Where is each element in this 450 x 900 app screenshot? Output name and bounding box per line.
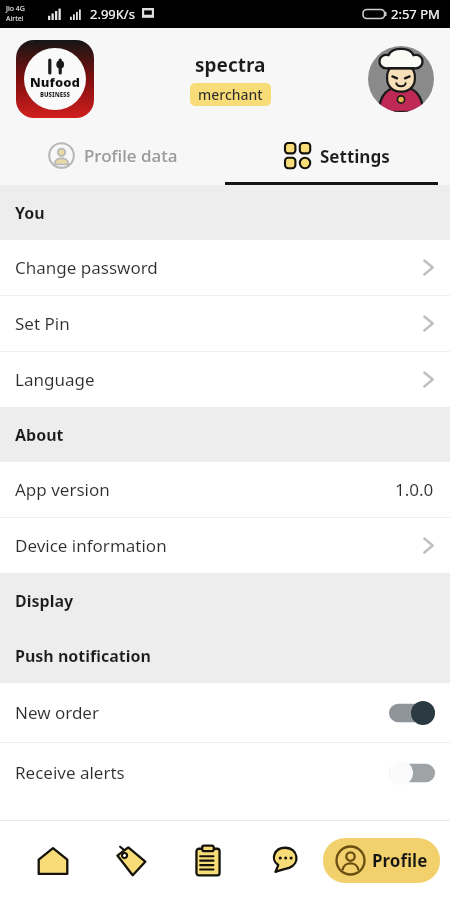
staticText: 1.0.0 [395, 478, 434, 501]
staticText: 2:57 PM [391, 5, 440, 23]
button[interactable]: Language [0, 352, 450, 407]
staticText: Language [15, 368, 95, 391]
button[interactable]: Home [14, 821, 92, 900]
staticText: You [15, 202, 45, 224]
button[interactable]: Profile avatar [368, 46, 434, 112]
staticText: Jio 4G [6, 4, 25, 14]
staticText: merchant [198, 85, 263, 104]
staticText: 2.99K/s [90, 5, 135, 23]
staticText: Change password [15, 256, 158, 279]
staticText: Settings [320, 145, 390, 168]
staticText: App version [15, 478, 110, 501]
staticText: Nufood [30, 73, 80, 91]
staticText: Device information [15, 534, 167, 557]
button[interactable]: Profile [323, 838, 440, 883]
button[interactable]: New order [0, 683, 450, 742]
button[interactable]: Orders [169, 821, 246, 900]
button[interactable]: Change password [0, 240, 450, 295]
staticText: Push notification [15, 645, 151, 667]
button[interactable]: Nufood Business logo [16, 40, 94, 118]
staticText: Profile data [84, 144, 178, 167]
staticText: Profile [372, 849, 428, 872]
staticText: BUSINESS [40, 91, 70, 99]
button[interactable]: Chat [246, 821, 323, 900]
staticText: New order [15, 701, 99, 724]
button[interactable]: App version [0, 462, 450, 517]
button[interactable]: Profile data [0, 129, 225, 182]
button[interactable]: Settings [225, 129, 450, 182]
staticText: Receive alerts [15, 761, 125, 784]
staticText: spectra [195, 52, 266, 78]
button[interactable]: Device information [0, 518, 450, 573]
button[interactable]: Receive alerts [0, 743, 450, 802]
staticText: Display [15, 590, 74, 612]
staticText: Set Pin [15, 312, 70, 335]
staticText: About [15, 424, 64, 446]
staticText: Airtel [6, 14, 24, 24]
button[interactable]: Offers [92, 821, 169, 900]
button[interactable]: Set Pin [0, 296, 450, 351]
